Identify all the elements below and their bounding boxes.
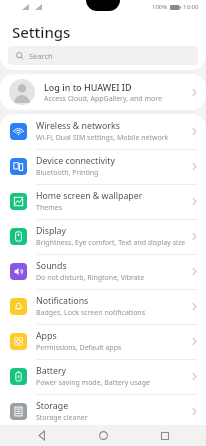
staticText: Home screen & wallpaper xyxy=(36,190,143,202)
staticText: Battery xyxy=(36,365,67,377)
staticText: Wireless & networks xyxy=(36,120,120,132)
staticText: Do not disturb, Ringtone, Vibrate xyxy=(36,273,145,283)
staticText: Settings xyxy=(12,22,71,42)
staticText: Permissions, Default apps xyxy=(36,343,122,353)
button[interactable]: Home xyxy=(83,425,123,446)
staticText: Bluetooth, Printing xyxy=(36,168,99,178)
staticText: Storage cleaner xyxy=(36,413,88,423)
button[interactable]: Apps xyxy=(0,324,206,359)
staticText: Badges, Lock screen notifications xyxy=(36,308,146,318)
staticText: Access Cloud, AppGallery, and more xyxy=(44,94,162,104)
staticText: Display xyxy=(36,225,67,237)
staticText: Brightness, Eye comfort, Text and displa… xyxy=(36,238,186,248)
button[interactable]: Device connectivity xyxy=(0,149,206,184)
button[interactable]: Back xyxy=(22,425,62,446)
button[interactable]: Storage xyxy=(0,394,206,429)
button[interactable]: Recent apps xyxy=(145,425,185,446)
button[interactable]: Home screen & wallpaper xyxy=(0,184,206,219)
staticText: 100% xyxy=(152,3,168,11)
button[interactable]: Digital balance xyxy=(0,429,206,446)
staticText: Themes xyxy=(36,203,63,213)
staticText: Device connectivity xyxy=(36,155,115,167)
button[interactable]: Search xyxy=(8,46,198,65)
staticText: Apps xyxy=(36,330,57,342)
button[interactable]: Battery xyxy=(0,359,206,394)
staticText: 10:00 xyxy=(183,3,199,11)
button[interactable]: Notifications xyxy=(0,289,206,324)
button[interactable]: Display xyxy=(0,219,206,254)
staticText: Wi-Fi, Dual SIM settings, Mobile network xyxy=(36,133,169,143)
button[interactable]: Wireless & networks xyxy=(0,114,206,149)
staticText: Notifications xyxy=(36,295,89,307)
button[interactable]: Sounds xyxy=(0,254,206,289)
button[interactable]: Log in to HUAWEI ID xyxy=(0,74,206,110)
staticText: Sounds xyxy=(36,260,67,272)
staticText: Power saving mode, Battery usage xyxy=(36,378,150,388)
staticText: Digital balance xyxy=(36,429,98,441)
staticText: Storage xyxy=(36,400,69,412)
staticText: Search xyxy=(29,51,53,61)
staticText: Log in to HUAWEI ID xyxy=(44,81,132,93)
